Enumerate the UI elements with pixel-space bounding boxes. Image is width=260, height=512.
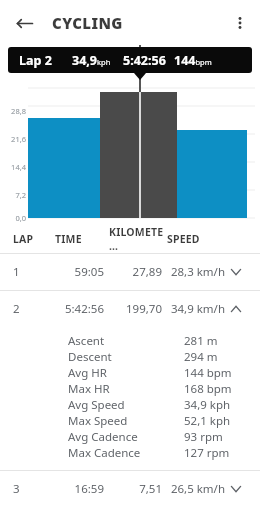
- staticText: Max Speed: [68, 413, 184, 429]
- staticText: Avg Cadence: [68, 429, 184, 445]
- staticText: LAP: [13, 232, 55, 246]
- staticText: 28,3 km/h: [168, 264, 225, 280]
- staticText: 127 rpm: [184, 445, 230, 461]
- staticText: Max HR: [68, 381, 184, 397]
- staticText: 28,8: [6, 106, 26, 116]
- staticText: 59:05: [55, 264, 104, 280]
- staticText: 168 bpm: [184, 381, 232, 397]
- staticText: Descent: [68, 349, 184, 365]
- button[interactable]: 3: [0, 471, 260, 507]
- staticText: 2: [13, 301, 55, 317]
- staticText: Avg Speed: [68, 397, 184, 413]
- staticText: 1: [13, 264, 55, 280]
- staticText: 5:42:56: [55, 301, 104, 317]
- staticText: 16:59: [55, 481, 104, 497]
- button[interactable]: 1: [0, 254, 260, 290]
- staticText: 34,9 kph: [184, 397, 231, 413]
- staticText: Max Cadence: [68, 445, 184, 461]
- staticText: 3: [13, 481, 55, 497]
- staticText: SPEED: [167, 232, 217, 246]
- staticText: 281 m: [184, 333, 218, 349]
- staticText: Lap 2: [19, 52, 52, 69]
- staticText: 26,5 km/h: [168, 481, 225, 497]
- staticText: 52,1 kph: [184, 413, 231, 429]
- staticText: Avg HR: [68, 365, 184, 381]
- staticText: 21,6: [6, 134, 26, 144]
- button[interactable]: More options: [222, 5, 258, 41]
- staticText: KILOMETE…: [109, 225, 167, 253]
- staticText: 7,2: [6, 190, 26, 200]
- staticText: Ascent: [68, 333, 184, 349]
- staticText: 34,9kph: [72, 52, 111, 69]
- staticText: 14,4: [6, 162, 26, 172]
- staticText: CYCLING: [52, 13, 123, 33]
- staticText: TIME: [55, 232, 109, 246]
- staticText: 27,89: [112, 264, 162, 280]
- staticText: 294 m: [184, 349, 218, 365]
- button[interactable]: 2: [0, 291, 260, 327]
- staticText: 93 rpm: [184, 429, 223, 445]
- staticText: 144 bpm: [184, 365, 232, 381]
- staticText: 144bpm: [174, 52, 212, 69]
- staticText: 7,51: [112, 481, 162, 497]
- staticText: 0,0: [6, 213, 26, 223]
- staticText: 199,70: [112, 301, 162, 317]
- staticText: 34,9 km/h: [168, 301, 225, 317]
- staticText: 5:42:56: [123, 52, 166, 69]
- button[interactable]: Back: [6, 5, 42, 41]
